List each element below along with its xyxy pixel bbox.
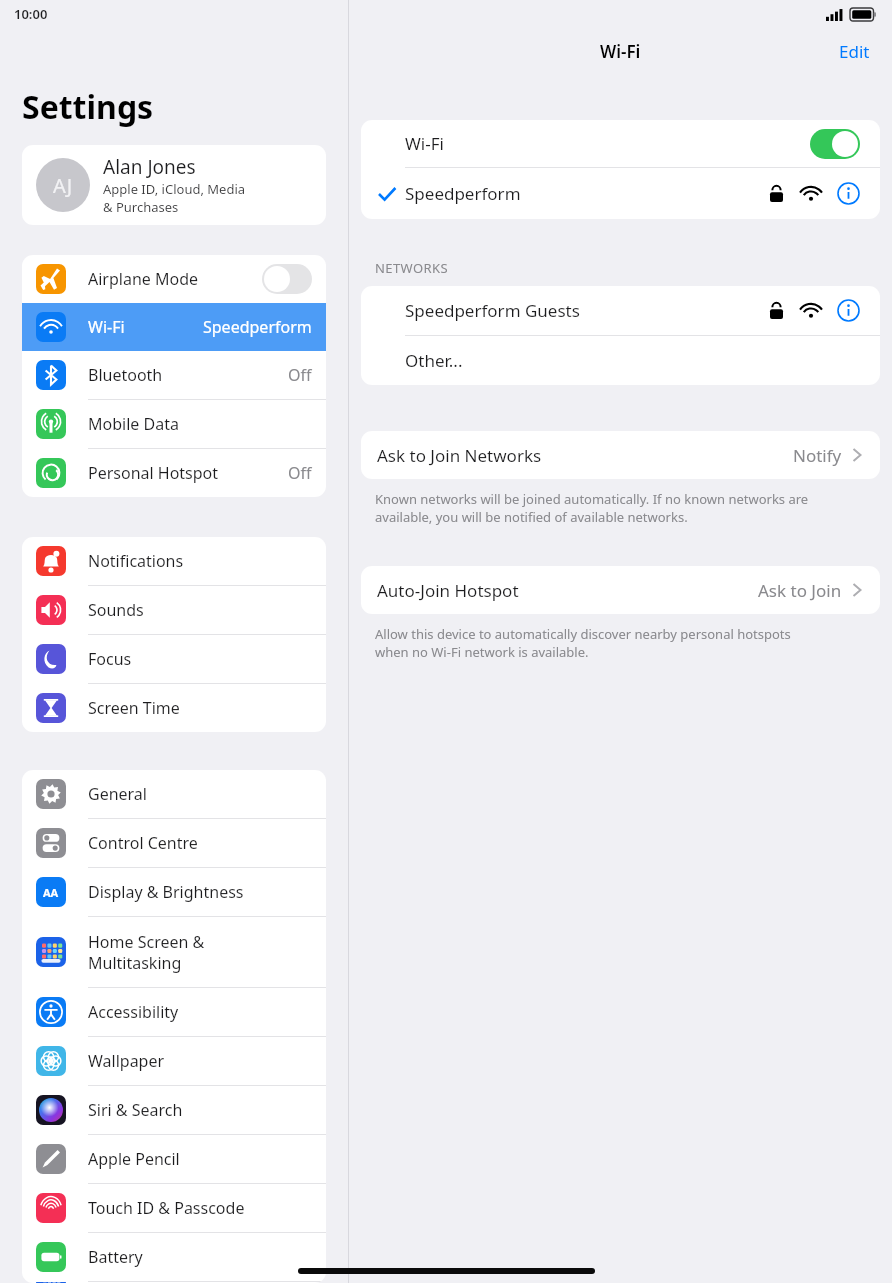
staticText: Mobile Data: [88, 413, 179, 435]
button[interactable]: AA: [22, 868, 326, 916]
staticText: Speedperform: [203, 316, 312, 338]
button[interactable]: Airplane Mode: [22, 255, 326, 303]
button[interactable]: Bluetooth: [22, 351, 326, 399]
staticText: Allow this device to automatically disco…: [375, 625, 791, 661]
staticText: 10:00: [14, 5, 48, 23]
button[interactable]: Speedperform: [361, 168, 880, 219]
button[interactable]: Wallpaper: [22, 1037, 326, 1085]
button[interactable]: Wi-Fi: [22, 303, 326, 351]
staticText: Ask to Join Networks: [377, 444, 542, 467]
staticText: Off: [288, 462, 312, 484]
staticText: Bluetooth: [88, 364, 163, 386]
staticText: Apple ID, iCloud, Media: [103, 180, 246, 198]
button[interactable]: Control Centre: [22, 819, 326, 867]
staticText: Settings: [22, 85, 154, 129]
button[interactable]: Other...: [361, 336, 880, 385]
button[interactable]: AJ: [22, 145, 326, 225]
staticText: Ask to Join: [758, 579, 842, 602]
staticText: Wi-Fi: [88, 316, 125, 338]
button[interactable]: Home Screen & Multitasking: [22, 917, 326, 987]
button[interactable]: Mobile Data: [22, 400, 326, 448]
button[interactable]: Sounds: [22, 586, 326, 634]
button[interactable]: Auto-Join Hotspot: [361, 566, 880, 614]
staticText: Speedperform Guests: [405, 299, 580, 322]
staticText: Display & Brightness: [88, 881, 244, 903]
staticText: AA: [43, 885, 59, 900]
staticText: & Purchases: [103, 198, 179, 216]
button[interactable]: More info: [837, 182, 860, 205]
staticText: General: [88, 783, 147, 805]
staticText: Edit: [839, 40, 870, 63]
staticText: Siri & Search: [88, 1099, 183, 1121]
button[interactable]: Notifications: [22, 537, 326, 585]
staticText: Wallpaper: [88, 1050, 165, 1072]
staticText: Notifications: [88, 550, 184, 572]
staticText: Other...: [405, 349, 463, 372]
button[interactable]: Toggle: [262, 264, 312, 294]
staticText: Notify: [793, 444, 842, 467]
staticText: AJ: [53, 172, 73, 199]
button[interactable]: Screen Time: [22, 684, 326, 732]
staticText: Apple Pencil: [88, 1148, 180, 1170]
staticText: Wi-Fi: [600, 40, 641, 63]
button[interactable]: Wi-Fi: [361, 120, 880, 167]
staticText: Personal Hotspot: [88, 462, 219, 484]
staticText: Wi-Fi: [405, 132, 444, 155]
staticText: NETWORKS: [375, 259, 448, 277]
staticText: Screen Time: [88, 697, 180, 719]
button[interactable]: Siri & Search: [22, 1086, 326, 1134]
staticText: Sounds: [88, 599, 144, 621]
button[interactable]: General: [22, 770, 326, 818]
button[interactable]: Ask to Join Networks: [361, 431, 880, 479]
staticText: Alan Jones: [103, 154, 196, 180]
staticText: Known networks will be joined automatica…: [375, 490, 809, 526]
staticText: Speedperform: [405, 182, 521, 205]
button[interactable]: More info: [837, 299, 860, 322]
button[interactable]: Apple Pencil: [22, 1135, 326, 1183]
button[interactable]: Battery: [22, 1233, 326, 1281]
button[interactable]: Touch ID & Passcode: [22, 1184, 326, 1232]
staticText: Airplane Mode: [88, 268, 199, 290]
button[interactable]: Toggle: [810, 129, 860, 159]
button[interactable]: Personal Hotspot: [22, 449, 326, 497]
staticText: Focus: [88, 648, 132, 670]
staticText: Off: [288, 364, 312, 386]
staticText: Home Screen & Multitasking: [88, 931, 205, 974]
button[interactable]: Accessibility: [22, 988, 326, 1036]
staticText: Accessibility: [88, 1001, 179, 1023]
staticText: Control Centre: [88, 832, 198, 854]
button[interactable]: Focus: [22, 635, 326, 683]
staticText: Auto-Join Hotspot: [377, 579, 519, 602]
button[interactable]: Speedperform Guests: [361, 286, 880, 335]
staticText: Battery: [88, 1246, 143, 1268]
staticText: Touch ID & Passcode: [88, 1197, 245, 1219]
button[interactable]: Privacy & Security: [22, 1282, 326, 1283]
button[interactable]: Edit: [817, 34, 892, 69]
